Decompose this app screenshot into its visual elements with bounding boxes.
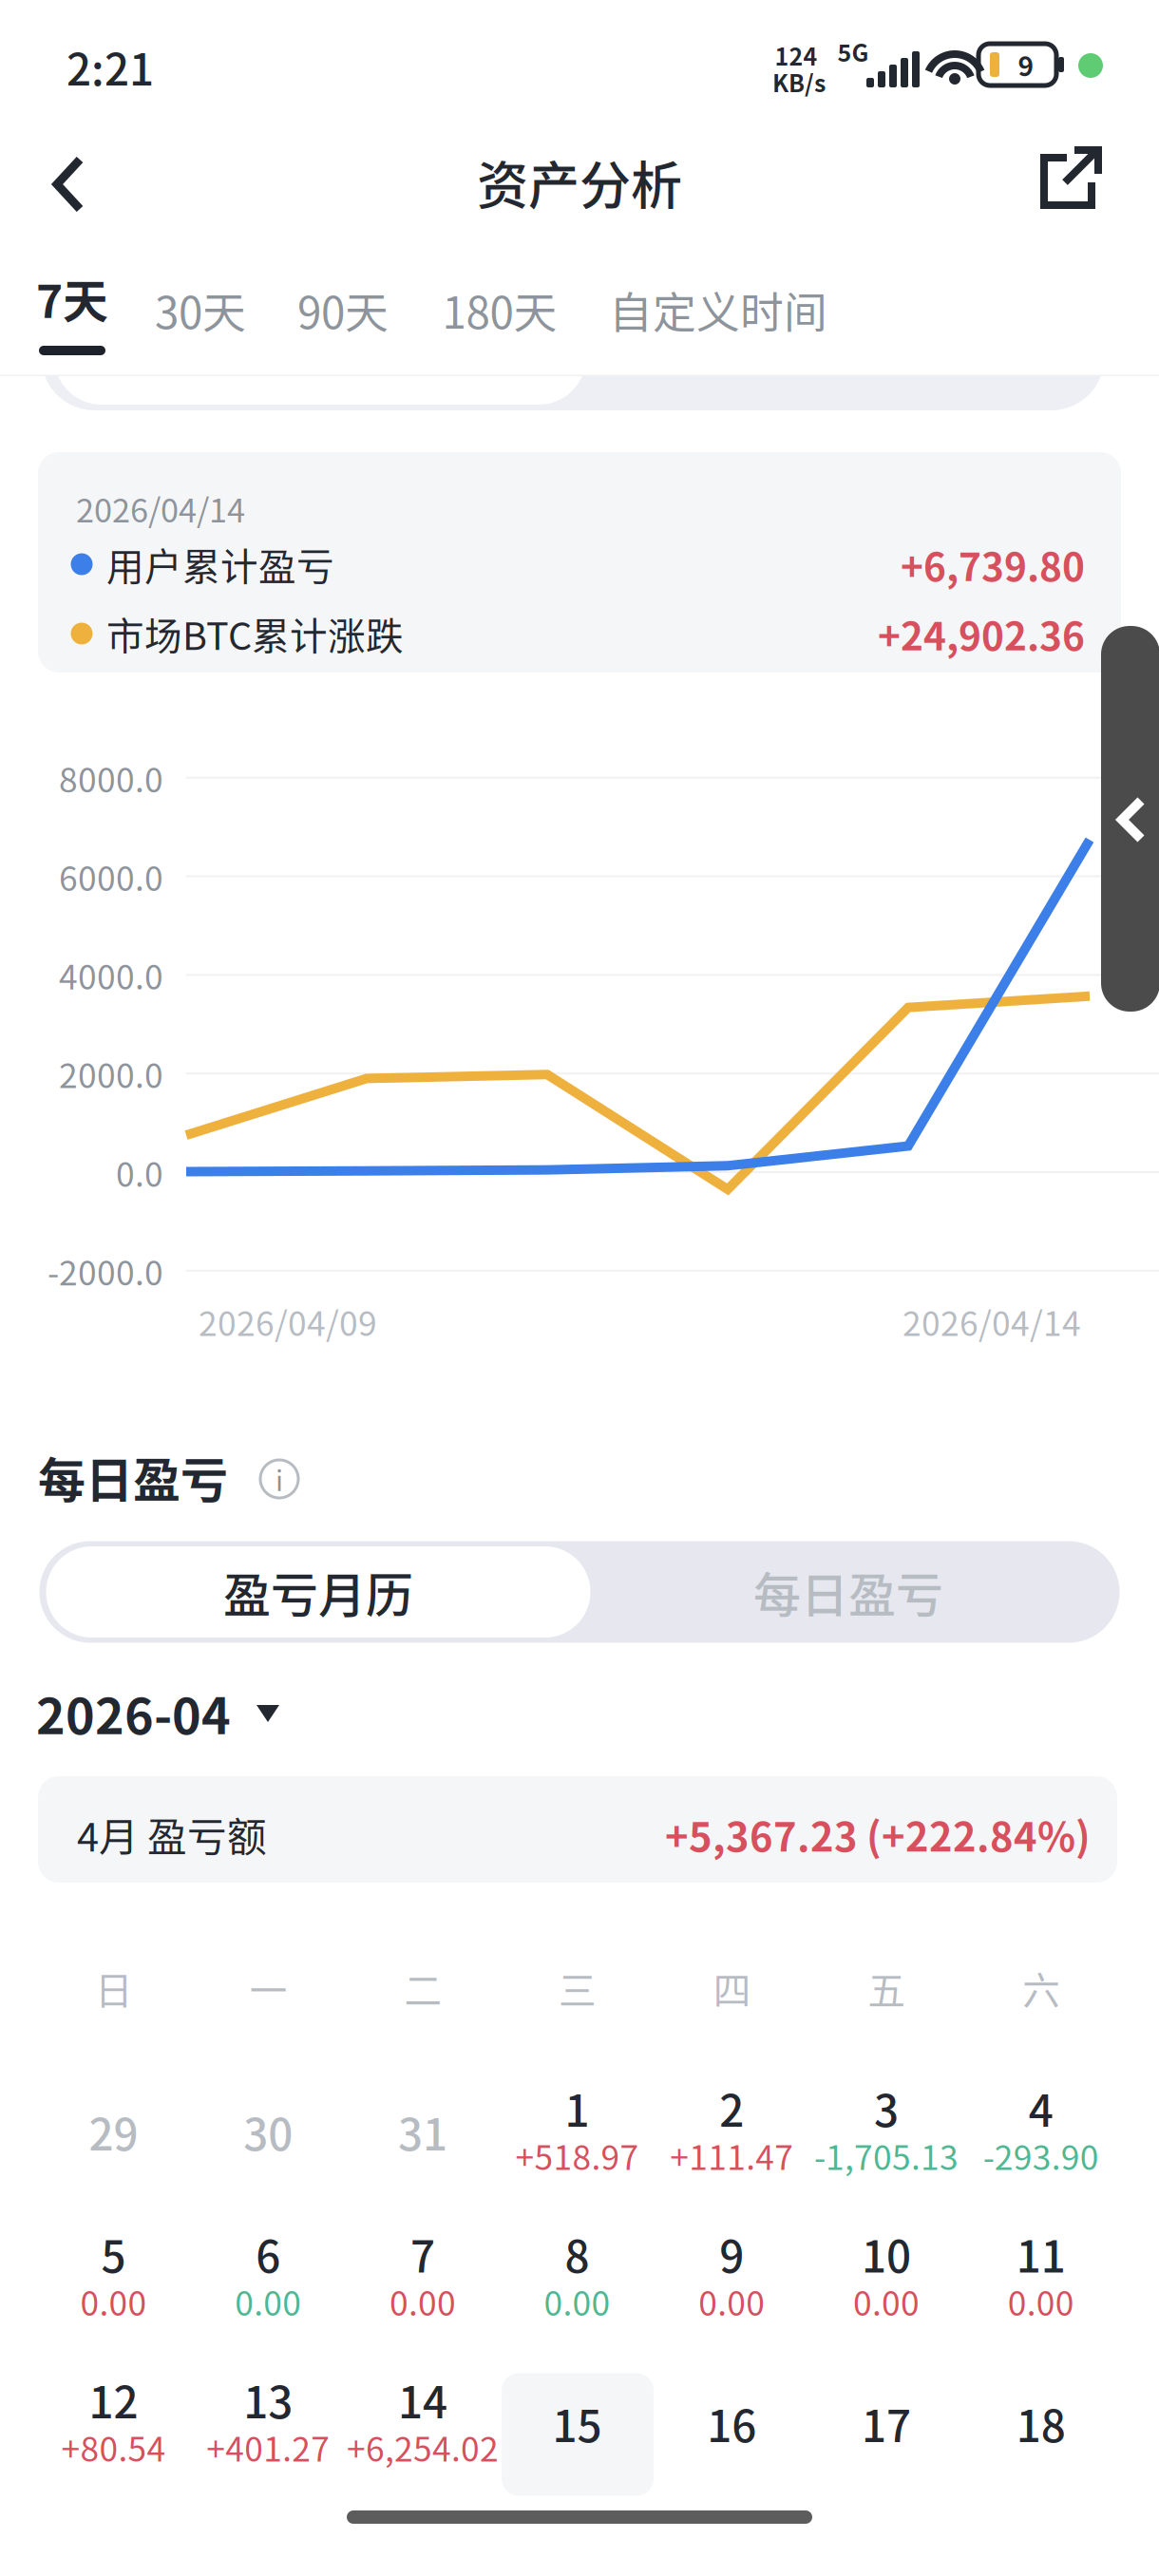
staticText: 市场BTC累计涨跌 bbox=[106, 606, 404, 661]
staticText: 四 bbox=[713, 1961, 751, 2015]
staticText: 2 bbox=[719, 2076, 744, 2139]
button[interactable]: 180天 bbox=[428, 274, 571, 346]
staticText: 15 bbox=[553, 2392, 602, 2455]
staticText: 2026/04/09 bbox=[199, 1297, 377, 1346]
button[interactable]: 7 bbox=[346, 2216, 501, 2358]
staticText: 90天 bbox=[297, 278, 389, 341]
button[interactable]: Open panel bbox=[1101, 626, 1159, 1012]
staticText: 10 bbox=[862, 2222, 911, 2285]
button[interactable]: Info bbox=[253, 1452, 306, 1506]
staticText: +24,902.36 bbox=[878, 606, 1085, 661]
staticText: 日 bbox=[95, 1961, 133, 2015]
staticText: 0.0 bbox=[116, 1148, 163, 1196]
button[interactable]: Back bbox=[34, 135, 152, 234]
button[interactable]: 9 bbox=[655, 2216, 810, 2358]
staticText: +111.47 bbox=[670, 2131, 794, 2180]
button[interactable]: 自定义时间 bbox=[599, 274, 837, 346]
button[interactable]: 8 bbox=[500, 2216, 655, 2358]
staticText: 2026/04/14 bbox=[76, 485, 245, 532]
staticText: 自定义时间 bbox=[609, 278, 827, 341]
staticText: 5 bbox=[101, 2222, 126, 2285]
staticText: 一 bbox=[250, 1961, 288, 2015]
staticText: 3 bbox=[874, 2076, 899, 2139]
button[interactable]: 3 bbox=[809, 2070, 964, 2212]
staticText: +401.27 bbox=[206, 2423, 330, 2471]
button[interactable]: Share bbox=[1021, 133, 1120, 232]
button[interactable]: 4 bbox=[964, 2070, 1119, 2212]
staticText: 盈亏月历 bbox=[223, 1558, 413, 1626]
staticText: 0.00 bbox=[389, 2277, 456, 2325]
staticText: +80.54 bbox=[61, 2423, 166, 2471]
staticText: 124 bbox=[775, 38, 817, 72]
button[interactable]: 13 bbox=[191, 2361, 346, 2504]
staticText: 二 bbox=[404, 1961, 442, 2015]
staticText: 每日盈亏 bbox=[752, 293, 927, 356]
button[interactable]: 29 bbox=[37, 2070, 191, 2212]
staticText: 5G bbox=[837, 34, 869, 68]
staticText: 0.00 bbox=[1008, 2277, 1074, 2325]
staticText: 0.00 bbox=[853, 2277, 920, 2325]
staticText: 2026/04/14 bbox=[902, 1297, 1081, 1346]
staticText: +518.97 bbox=[515, 2131, 639, 2180]
staticText: 2026-04 bbox=[36, 1677, 231, 1748]
staticText: 30 bbox=[243, 2100, 293, 2163]
staticText: +6,254.02 bbox=[347, 2423, 499, 2471]
staticText: 13 bbox=[243, 2368, 293, 2431]
button[interactable]: 12 bbox=[37, 2361, 191, 2504]
staticText: 五 bbox=[868, 1961, 906, 2015]
staticText: 6 bbox=[256, 2222, 280, 2285]
staticText: 17 bbox=[862, 2392, 911, 2455]
staticText: 180天 bbox=[442, 278, 557, 341]
staticText: 2:21 bbox=[66, 35, 154, 98]
button[interactable]: 14 bbox=[346, 2361, 501, 2504]
button[interactable]: 30 bbox=[191, 2070, 346, 2212]
staticText: 4000.0 bbox=[59, 951, 163, 999]
button[interactable]: 1 bbox=[500, 2070, 655, 2212]
staticText: 30天 bbox=[155, 278, 246, 341]
staticText: 9 bbox=[719, 2222, 744, 2285]
button[interactable]: 11 bbox=[964, 2216, 1119, 2358]
button[interactable]: 每日盈亏 bbox=[584, 1546, 1112, 1638]
button[interactable]: 10 bbox=[809, 2216, 964, 2358]
button[interactable]: 5 bbox=[37, 2216, 191, 2358]
staticText: 7天 bbox=[36, 265, 108, 331]
staticText: 每日盈亏 bbox=[753, 1558, 943, 1626]
staticText: 每日盈亏 bbox=[38, 1443, 228, 1511]
staticText: +5,367.23 (+222.84%) bbox=[665, 1806, 1091, 1863]
staticText: +6,739.80 bbox=[901, 536, 1085, 592]
staticText: 三 bbox=[559, 1961, 597, 2015]
button[interactable]: 31 bbox=[346, 2070, 501, 2212]
staticText: 14 bbox=[398, 2368, 447, 2431]
button[interactable]: 2 bbox=[655, 2070, 810, 2212]
staticText: 11 bbox=[1016, 2222, 1066, 2285]
button[interactable]: 2026-04 bbox=[39, 1675, 314, 1751]
button[interactable]: 17 bbox=[809, 2361, 964, 2504]
button[interactable]: 90天 bbox=[290, 274, 396, 346]
staticText: 六 bbox=[1022, 1961, 1060, 2015]
button[interactable]: 30天 bbox=[147, 274, 254, 346]
staticText: 盈亏月历 bbox=[233, 293, 408, 356]
staticText: 1 bbox=[565, 2076, 590, 2139]
button[interactable]: 18 bbox=[964, 2361, 1119, 2504]
staticText: 9 bbox=[1018, 45, 1034, 84]
staticText: 7 bbox=[410, 2222, 435, 2285]
staticText: 8 bbox=[565, 2222, 590, 2285]
staticText: -293.90 bbox=[983, 2131, 1099, 2180]
button[interactable]: 15 bbox=[500, 2361, 655, 2504]
staticText: 0.00 bbox=[80, 2277, 147, 2325]
staticText: 31 bbox=[398, 2100, 447, 2163]
button[interactable]: 16 bbox=[655, 2361, 810, 2504]
staticText: 0.00 bbox=[235, 2277, 301, 2325]
staticText: 18 bbox=[1016, 2392, 1066, 2455]
staticText: KB/s bbox=[772, 64, 826, 99]
button[interactable]: 6 bbox=[191, 2216, 346, 2358]
staticText: 16 bbox=[707, 2392, 756, 2455]
staticText: i bbox=[275, 1459, 283, 1499]
staticText: 用户累计盈亏 bbox=[106, 537, 334, 591]
staticText: 29 bbox=[89, 2100, 138, 2163]
staticText: 0.00 bbox=[699, 2277, 765, 2325]
staticText: 2000.0 bbox=[59, 1049, 163, 1098]
button[interactable]: 7天 bbox=[19, 258, 125, 369]
staticText: 12 bbox=[89, 2368, 138, 2431]
button[interactable]: 盈亏月历 bbox=[46, 1546, 590, 1638]
